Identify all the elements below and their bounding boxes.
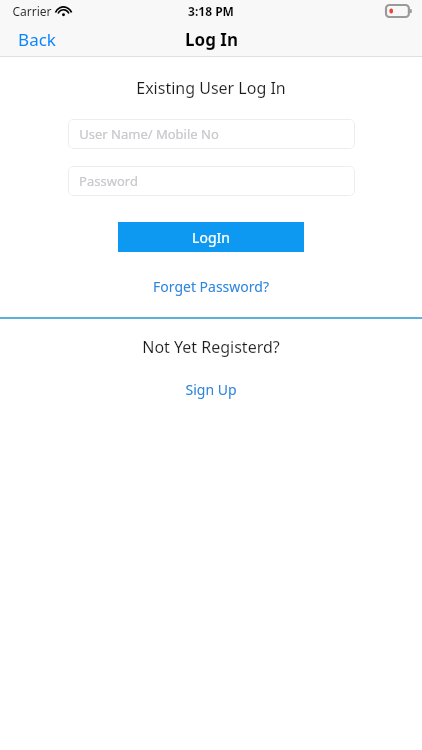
button[interactable]: LogIn xyxy=(118,222,304,252)
staticText: Existing User Log In xyxy=(136,77,286,99)
staticText: Back xyxy=(18,28,56,50)
staticText: Password xyxy=(79,172,138,190)
button[interactable]: User Name/ Mobile No xyxy=(68,119,355,149)
staticText: LogIn xyxy=(192,228,230,247)
staticText: Forget Password? xyxy=(153,277,269,296)
button[interactable]: Password xyxy=(68,166,355,196)
button[interactable]: Forget Password? xyxy=(143,274,279,299)
staticText: User Name/ Mobile No xyxy=(79,125,219,143)
button[interactable]: Back xyxy=(0,22,74,56)
staticText: Carrier xyxy=(12,3,52,19)
staticText: Sign Up xyxy=(185,380,237,399)
button[interactable]: Sign Up xyxy=(175,377,247,402)
staticText: Log In xyxy=(185,28,238,51)
staticText: 3:18 PM xyxy=(188,3,234,19)
staticText: Not Yet Registerd? xyxy=(142,336,280,358)
